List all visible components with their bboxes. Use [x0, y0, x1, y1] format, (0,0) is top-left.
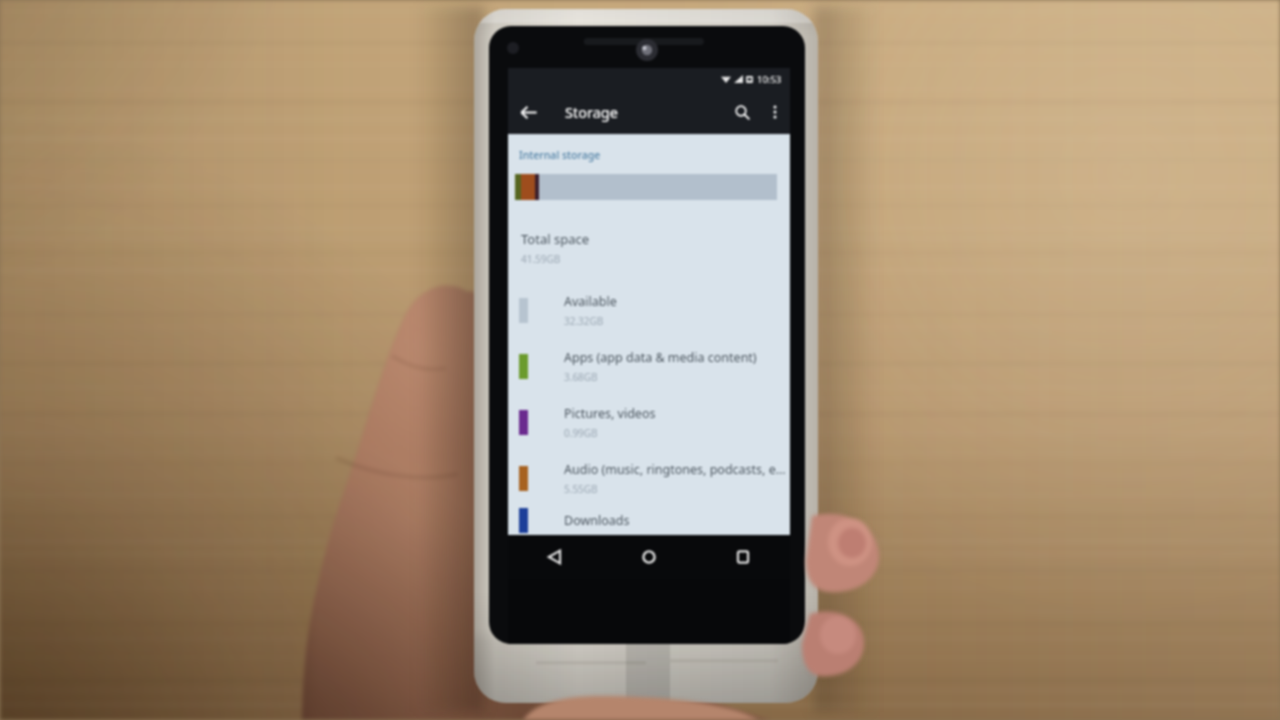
button[interactable]: Search	[724, 90, 760, 134]
staticText: Available	[564, 293, 617, 310]
staticText: 0.99GB	[564, 426, 598, 440]
staticText: 5.55GB	[564, 482, 598, 496]
button[interactable]: Pictures, videos	[508, 394, 790, 450]
button[interactable]: Audio (music, ringtones, podcasts, et…	[508, 450, 790, 506]
staticText: Apps (app data & media content)	[564, 349, 757, 366]
staticText: 41.59GB	[521, 252, 561, 266]
button[interactable]: Apps (app data & media content)	[508, 338, 790, 394]
staticText: Storage	[565, 102, 618, 122]
button[interactable]: Navigate up	[508, 90, 548, 134]
staticText: Audio (music, ringtones, podcasts, et…	[564, 461, 790, 478]
button[interactable]: Recent apps	[696, 535, 790, 579]
button[interactable]: Home	[602, 535, 696, 579]
staticText: 3.68GB	[564, 370, 598, 384]
staticText: Total space	[521, 230, 589, 248]
button[interactable]: More options	[760, 90, 790, 134]
staticText: Internal storage	[519, 148, 601, 162]
staticText: Pictures, videos	[564, 405, 656, 422]
staticText: 32.32GB	[564, 314, 604, 328]
button[interactable]: Available	[508, 282, 790, 338]
staticText: 10:53	[757, 73, 782, 86]
button[interactable]: Back	[508, 535, 602, 579]
button[interactable]: Downloads	[508, 506, 790, 535]
staticText: Downloads	[564, 512, 630, 529]
